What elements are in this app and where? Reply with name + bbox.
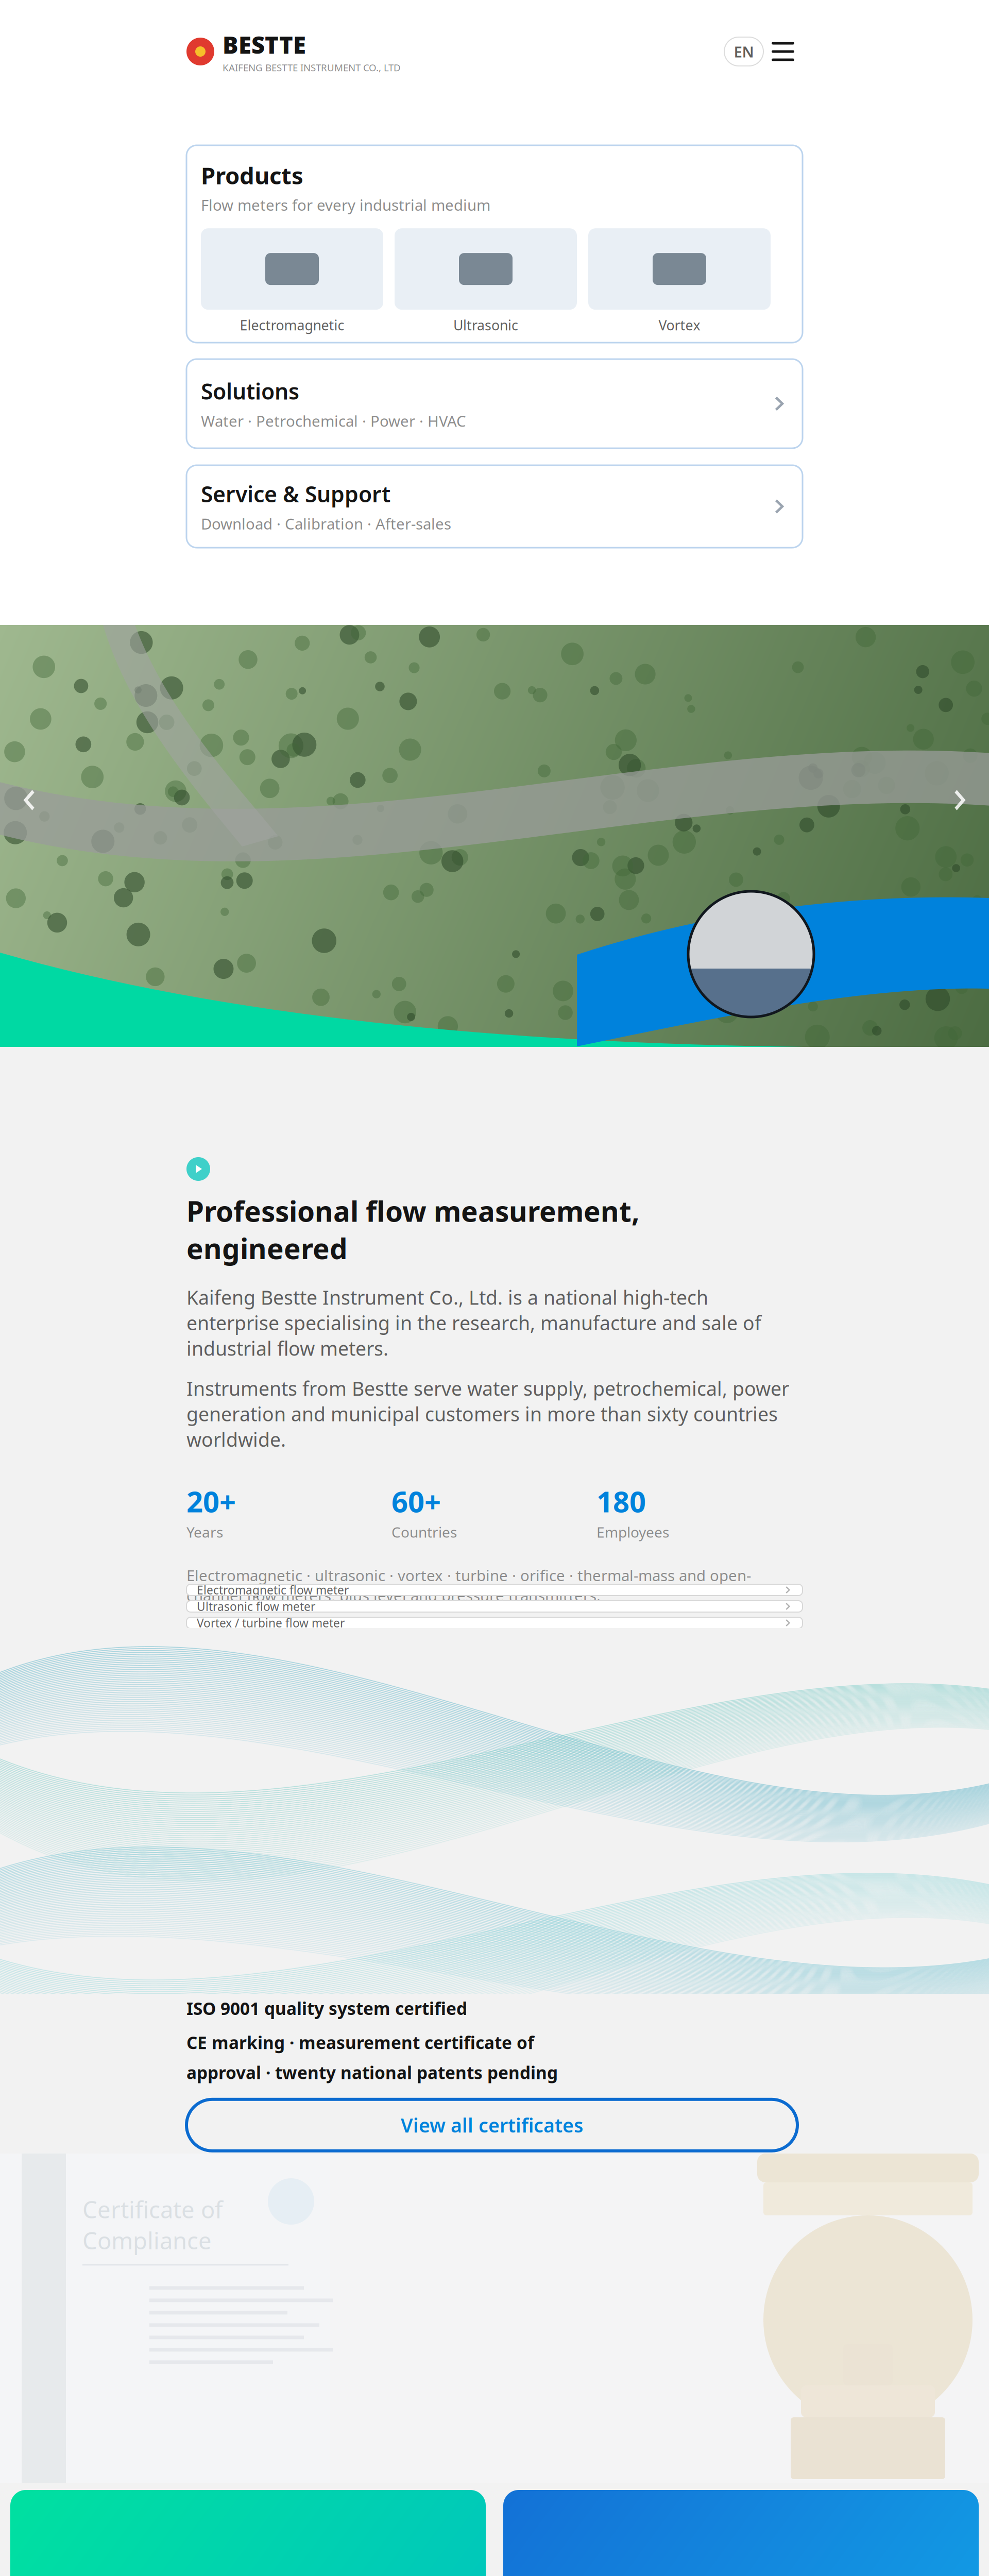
staticText: Water · Petrochemical · Power · HVAC bbox=[201, 411, 466, 431]
staticText: ISO 9001 quality system certified bbox=[186, 1997, 467, 2020]
staticText: Flow meters for every industrial medium bbox=[201, 195, 490, 215]
staticText: Kaifeng Bestte Instrument Co., Ltd. is a… bbox=[186, 1284, 761, 1361]
button[interactable]: Vortex / turbine flow meter bbox=[186, 1617, 803, 1629]
staticText: Electromagnetic · ultrasonic · vortex · … bbox=[186, 1565, 751, 1605]
staticText: KAIFENG BESTTE INSTRUMENT CO., LTD bbox=[223, 61, 401, 74]
staticText: Electromagnetic flow meter bbox=[197, 1582, 349, 1598]
staticText: View all certificates bbox=[401, 2112, 583, 2138]
button[interactable]: Service & Support bbox=[186, 465, 803, 548]
staticText: CE marking · measurement certificate of bbox=[186, 2031, 534, 2054]
staticText: Solutions bbox=[201, 376, 299, 406]
staticText: 180 bbox=[596, 1482, 646, 1520]
staticText: Years bbox=[186, 1522, 223, 1542]
staticText: EN bbox=[734, 41, 754, 62]
staticText: 60+ bbox=[391, 1482, 441, 1520]
button[interactable]: Electromagnetic flow meter bbox=[186, 1584, 803, 1596]
button[interactable]: Next slide bbox=[953, 787, 970, 814]
staticText: Download · Calibration · After-sales bbox=[201, 514, 451, 534]
staticText: Vortex / turbine flow meter bbox=[197, 1615, 345, 1631]
staticText: Ultrasonic bbox=[453, 316, 518, 334]
button[interactable]: Products bbox=[186, 145, 803, 343]
button[interactable]: Solutions bbox=[186, 359, 803, 448]
button[interactable]: Previous slide bbox=[19, 787, 36, 814]
staticText: Electromagnetic bbox=[240, 316, 344, 334]
staticText: Vortex bbox=[659, 316, 700, 334]
staticText: Products bbox=[201, 160, 303, 191]
staticText: Countries bbox=[391, 1522, 457, 1542]
button[interactable]: Menu bbox=[763, 34, 803, 69]
button[interactable]: Language bbox=[724, 37, 763, 66]
button[interactable]: Ultrasonic flow meter bbox=[186, 1601, 803, 1612]
button[interactable]: BESTTE bbox=[186, 29, 401, 74]
button[interactable]: R&D centre bbox=[503, 2490, 979, 2576]
staticText: Professional flow measurement, engineere… bbox=[186, 1192, 640, 1267]
staticText: Service & Support bbox=[201, 479, 390, 508]
button[interactable]: View all certificates bbox=[186, 2099, 797, 2151]
button[interactable]: Smart factory bbox=[10, 2490, 486, 2576]
staticText: 20+ bbox=[186, 1482, 236, 1520]
staticText: Certificate of Compliance bbox=[82, 2194, 223, 2256]
staticText: Ultrasonic flow meter bbox=[197, 1599, 315, 1614]
staticText: Instruments from Bestte serve water supp… bbox=[186, 1376, 789, 1452]
staticText: BESTTE bbox=[223, 29, 306, 60]
staticText: Employees bbox=[596, 1522, 669, 1542]
staticText: approval · twenty national patents pendi… bbox=[186, 2061, 558, 2084]
